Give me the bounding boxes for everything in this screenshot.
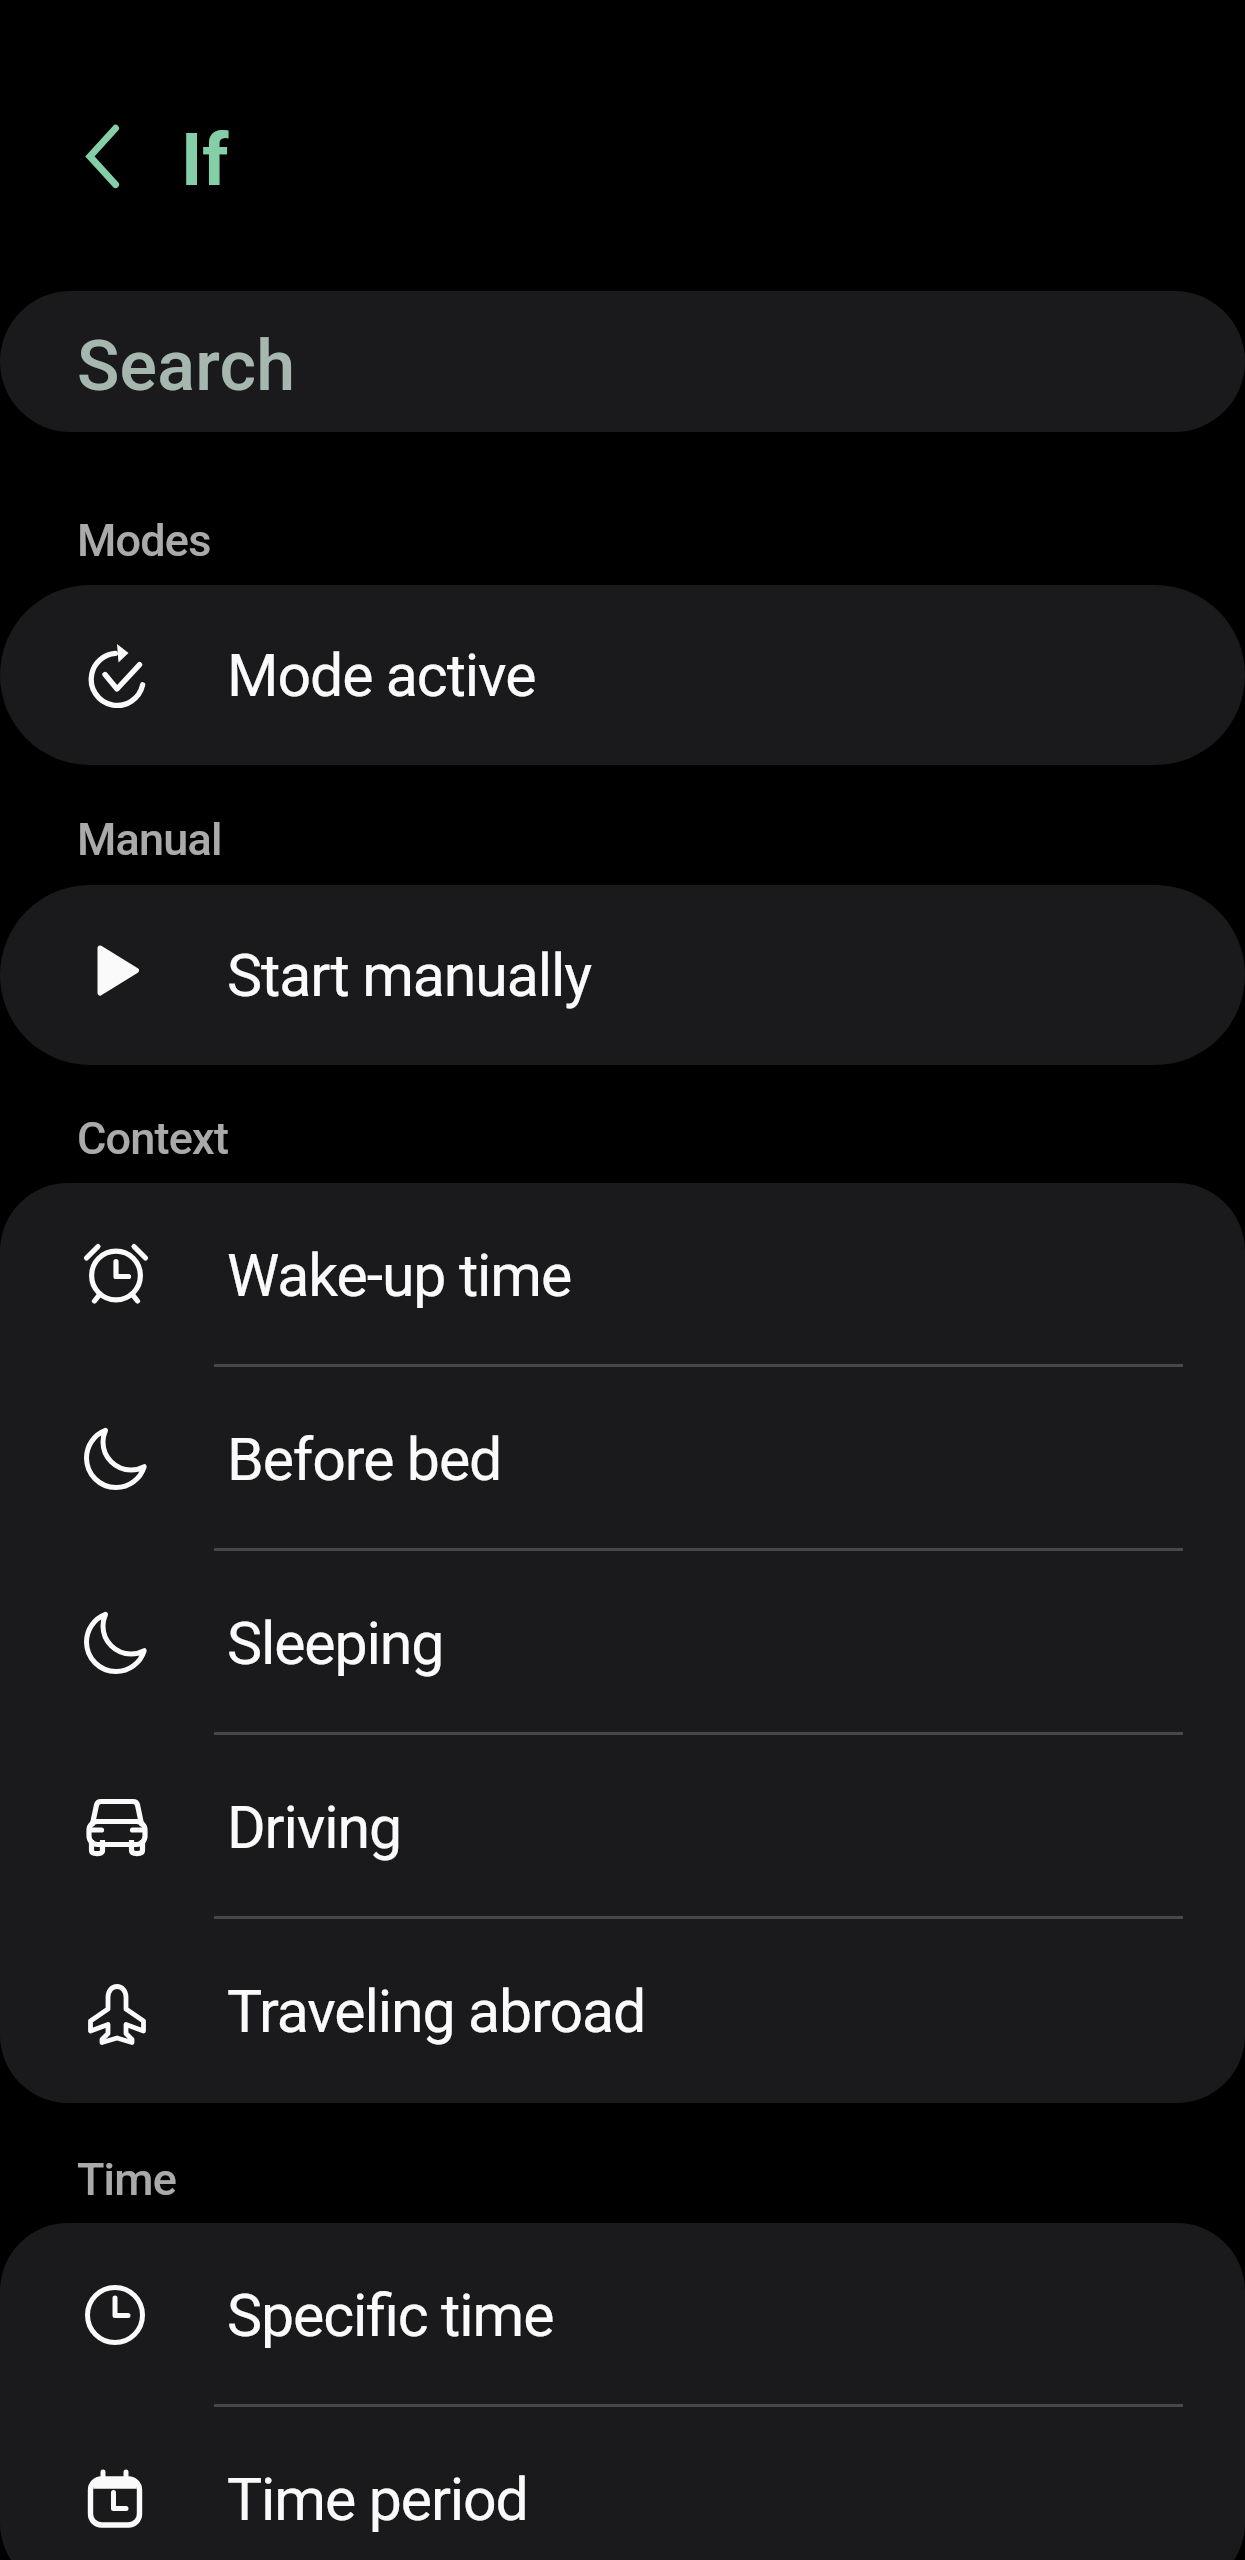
button[interactable]: Before bed [0,1367,1245,1551]
button[interactable]: Navigate up [42,96,162,216]
button[interactable]: Wake-up time [0,1183,1245,1367]
staticText: Sleeping [227,1609,444,1678]
button[interactable]: Sleeping [0,1551,1245,1735]
staticText: Before bed [227,1425,502,1494]
staticText: Specific time [227,2281,554,2350]
staticText: Driving [227,1793,401,1862]
button[interactable]: Mode active [0,585,1245,765]
button[interactable]: Traveling abroad [0,1919,1245,2103]
button[interactable]: Time period [0,2407,1245,2560]
staticText: Context [77,1112,229,1165]
button[interactable]: Specific time [0,2223,1245,2407]
staticText: Time period [227,2465,528,2534]
button[interactable]: Driving [0,1735,1245,1919]
button[interactable]: Search [0,291,1245,432]
staticText: Start manually [227,941,592,1010]
staticText: Search [77,325,296,407]
staticText: If [181,117,229,203]
staticText: Time [77,2153,176,2206]
staticText: Mode active [227,641,536,710]
staticText: Modes [77,514,211,567]
staticText: Wake-up time [227,1241,572,1310]
staticText: Traveling abroad [227,1977,646,2046]
staticText: Manual [77,813,222,866]
button[interactable]: Start manually [0,885,1245,1065]
